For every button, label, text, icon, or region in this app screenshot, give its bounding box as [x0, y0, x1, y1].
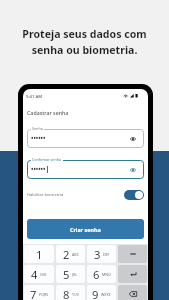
staticText: 8: [63, 287, 70, 300]
staticText: Senha: [32, 126, 43, 131]
button[interactable]: 4: [24, 265, 54, 283]
staticText: Cadastrar senha: [27, 109, 69, 116]
staticText: 3: [94, 247, 101, 262]
staticText: 9: [92, 287, 99, 300]
staticText: Confirmar senha: [32, 157, 62, 162]
staticText: DEF: [103, 252, 110, 257]
button[interactable]: 7: [24, 285, 54, 300]
button[interactable]: 8: [56, 285, 85, 300]
staticText: 1: [36, 247, 43, 262]
staticText: ••••••: [31, 134, 46, 143]
staticText: TUV: [72, 292, 79, 297]
staticText: WXYZ: [101, 292, 111, 297]
button[interactable]: 5: [56, 265, 85, 283]
staticText: Proteja seus dados com senha ou biometri…: [12, 27, 157, 57]
staticText: PQRS: [39, 292, 49, 297]
button[interactable]: Mostrar senha: [125, 129, 141, 148]
staticText: Habilitar biometria: [27, 192, 64, 198]
button[interactable]: Criar senha: [27, 219, 144, 239]
button[interactable]: Mostrar senha: [125, 160, 141, 179]
staticText: 2: [63, 247, 70, 262]
button[interactable]: Apagar: [118, 285, 147, 300]
button[interactable]: 9: [87, 285, 116, 300]
button[interactable]: Enter: [118, 265, 147, 283]
staticText: 4: [31, 267, 38, 282]
button[interactable]: 3: [87, 245, 116, 263]
staticText: MNO: [102, 272, 111, 277]
staticText: 6: [93, 267, 100, 282]
staticText: 9:41 AM: [26, 94, 43, 100]
button[interactable]: Habilitar biometria: [124, 190, 144, 200]
staticText: Criar senha: [70, 226, 101, 233]
staticText: ••••••: [31, 165, 46, 174]
button[interactable]: Traço: [118, 245, 147, 263]
button[interactable]: 1: [24, 245, 54, 263]
button[interactable]: 6: [87, 265, 116, 283]
staticText: 7: [30, 287, 37, 300]
staticText: ABC: [72, 252, 79, 257]
staticText: JKL: [72, 272, 78, 277]
button[interactable]: 2: [56, 245, 85, 263]
staticText: GHI: [40, 272, 47, 277]
staticText: 5: [63, 267, 70, 282]
